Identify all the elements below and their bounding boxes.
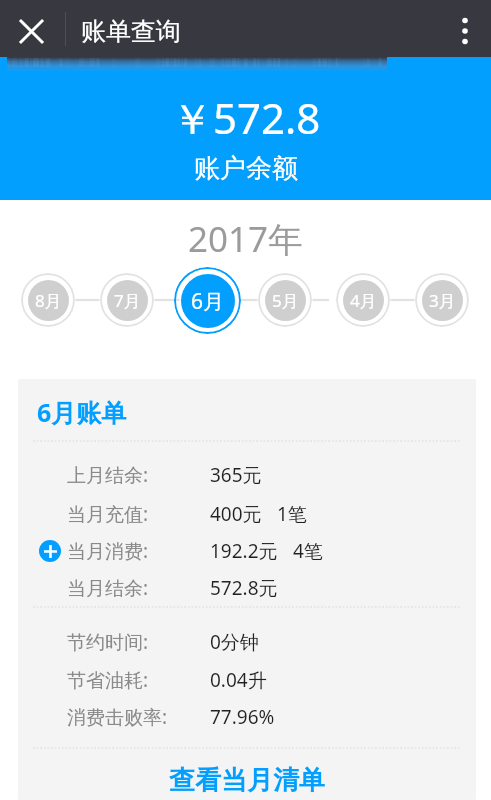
button[interactable]: 7月 <box>100 273 154 327</box>
staticText: 当月结余: <box>67 575 149 601</box>
staticText: 1笔 <box>277 501 307 527</box>
staticText: 4笔 <box>293 538 323 564</box>
staticText: 账单查询 <box>81 16 181 47</box>
staticText: 上月结余: <box>67 462 149 488</box>
staticText: 当月充值: <box>67 501 149 527</box>
button[interactable]: 4月 <box>336 273 390 327</box>
staticText: ￥572.8 <box>171 89 321 139</box>
staticText: 节省油耗: <box>67 667 149 693</box>
staticText: 192.2元 <box>210 538 278 564</box>
button[interactable]: 6月 <box>174 267 241 334</box>
staticText: 2017年 <box>188 215 304 260</box>
staticText: 400元 <box>210 501 262 527</box>
staticText: 消费击败率: <box>67 704 168 730</box>
staticText: 572.8元 <box>210 575 278 601</box>
button[interactable]: 查看当月清单 <box>18 759 476 800</box>
staticText: 4月 <box>350 289 377 312</box>
staticText: 当月消费: <box>67 538 149 564</box>
staticText: 365元 <box>210 462 262 488</box>
staticText: 5月 <box>272 289 299 312</box>
button[interactable]: 8月 <box>21 273 75 327</box>
button[interactable]: 5月 <box>258 273 312 327</box>
staticText: 8月 <box>35 289 62 312</box>
staticText: 6月 <box>191 287 225 316</box>
staticText: 节约时间: <box>67 629 149 655</box>
staticText: 6月账单 <box>37 395 127 429</box>
staticText: 77.96% <box>210 704 275 730</box>
staticText: 查看当月清单 <box>169 764 325 797</box>
staticText: 7月 <box>114 289 141 312</box>
button[interactable]: Close <box>9 9 53 53</box>
staticText: 0分钟 <box>210 629 259 655</box>
button[interactable]: More options <box>443 9 487 53</box>
staticText: 3月 <box>429 289 456 312</box>
staticText: 账户余额 <box>194 152 298 185</box>
staticText: 0.04升 <box>210 667 267 693</box>
button[interactable]: 3月 <box>415 273 469 327</box>
